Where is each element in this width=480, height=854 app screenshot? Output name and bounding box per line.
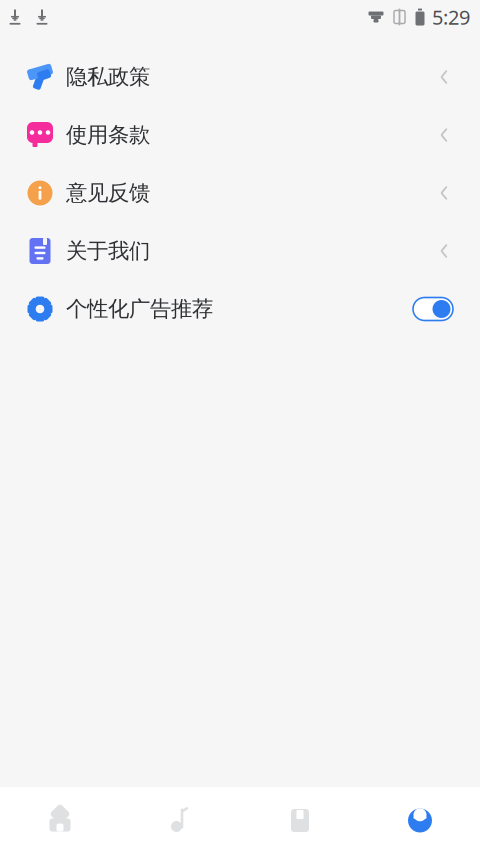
staticText: 意见反馈 [66,180,150,206]
button[interactable]: 意见反馈 [0,164,480,222]
button[interactable]: 使用条款 [0,106,480,164]
staticText: 隐私政策 [66,64,150,90]
button[interactable]: Music [120,787,240,854]
staticText: 关于我们 [66,238,150,264]
button[interactable]: Bookmarks [240,787,360,854]
button[interactable]: Home [0,787,120,854]
staticText: 个性化广告推荐 [66,296,213,322]
button[interactable]: 关于我们 [0,222,480,280]
button[interactable]: 隐私政策 [0,48,480,106]
button[interactable]: 个性化广告推荐 [0,280,480,338]
button[interactable]: Profile [360,787,480,854]
staticText: 5:29 [432,4,470,30]
staticText: 使用条款 [66,122,150,148]
